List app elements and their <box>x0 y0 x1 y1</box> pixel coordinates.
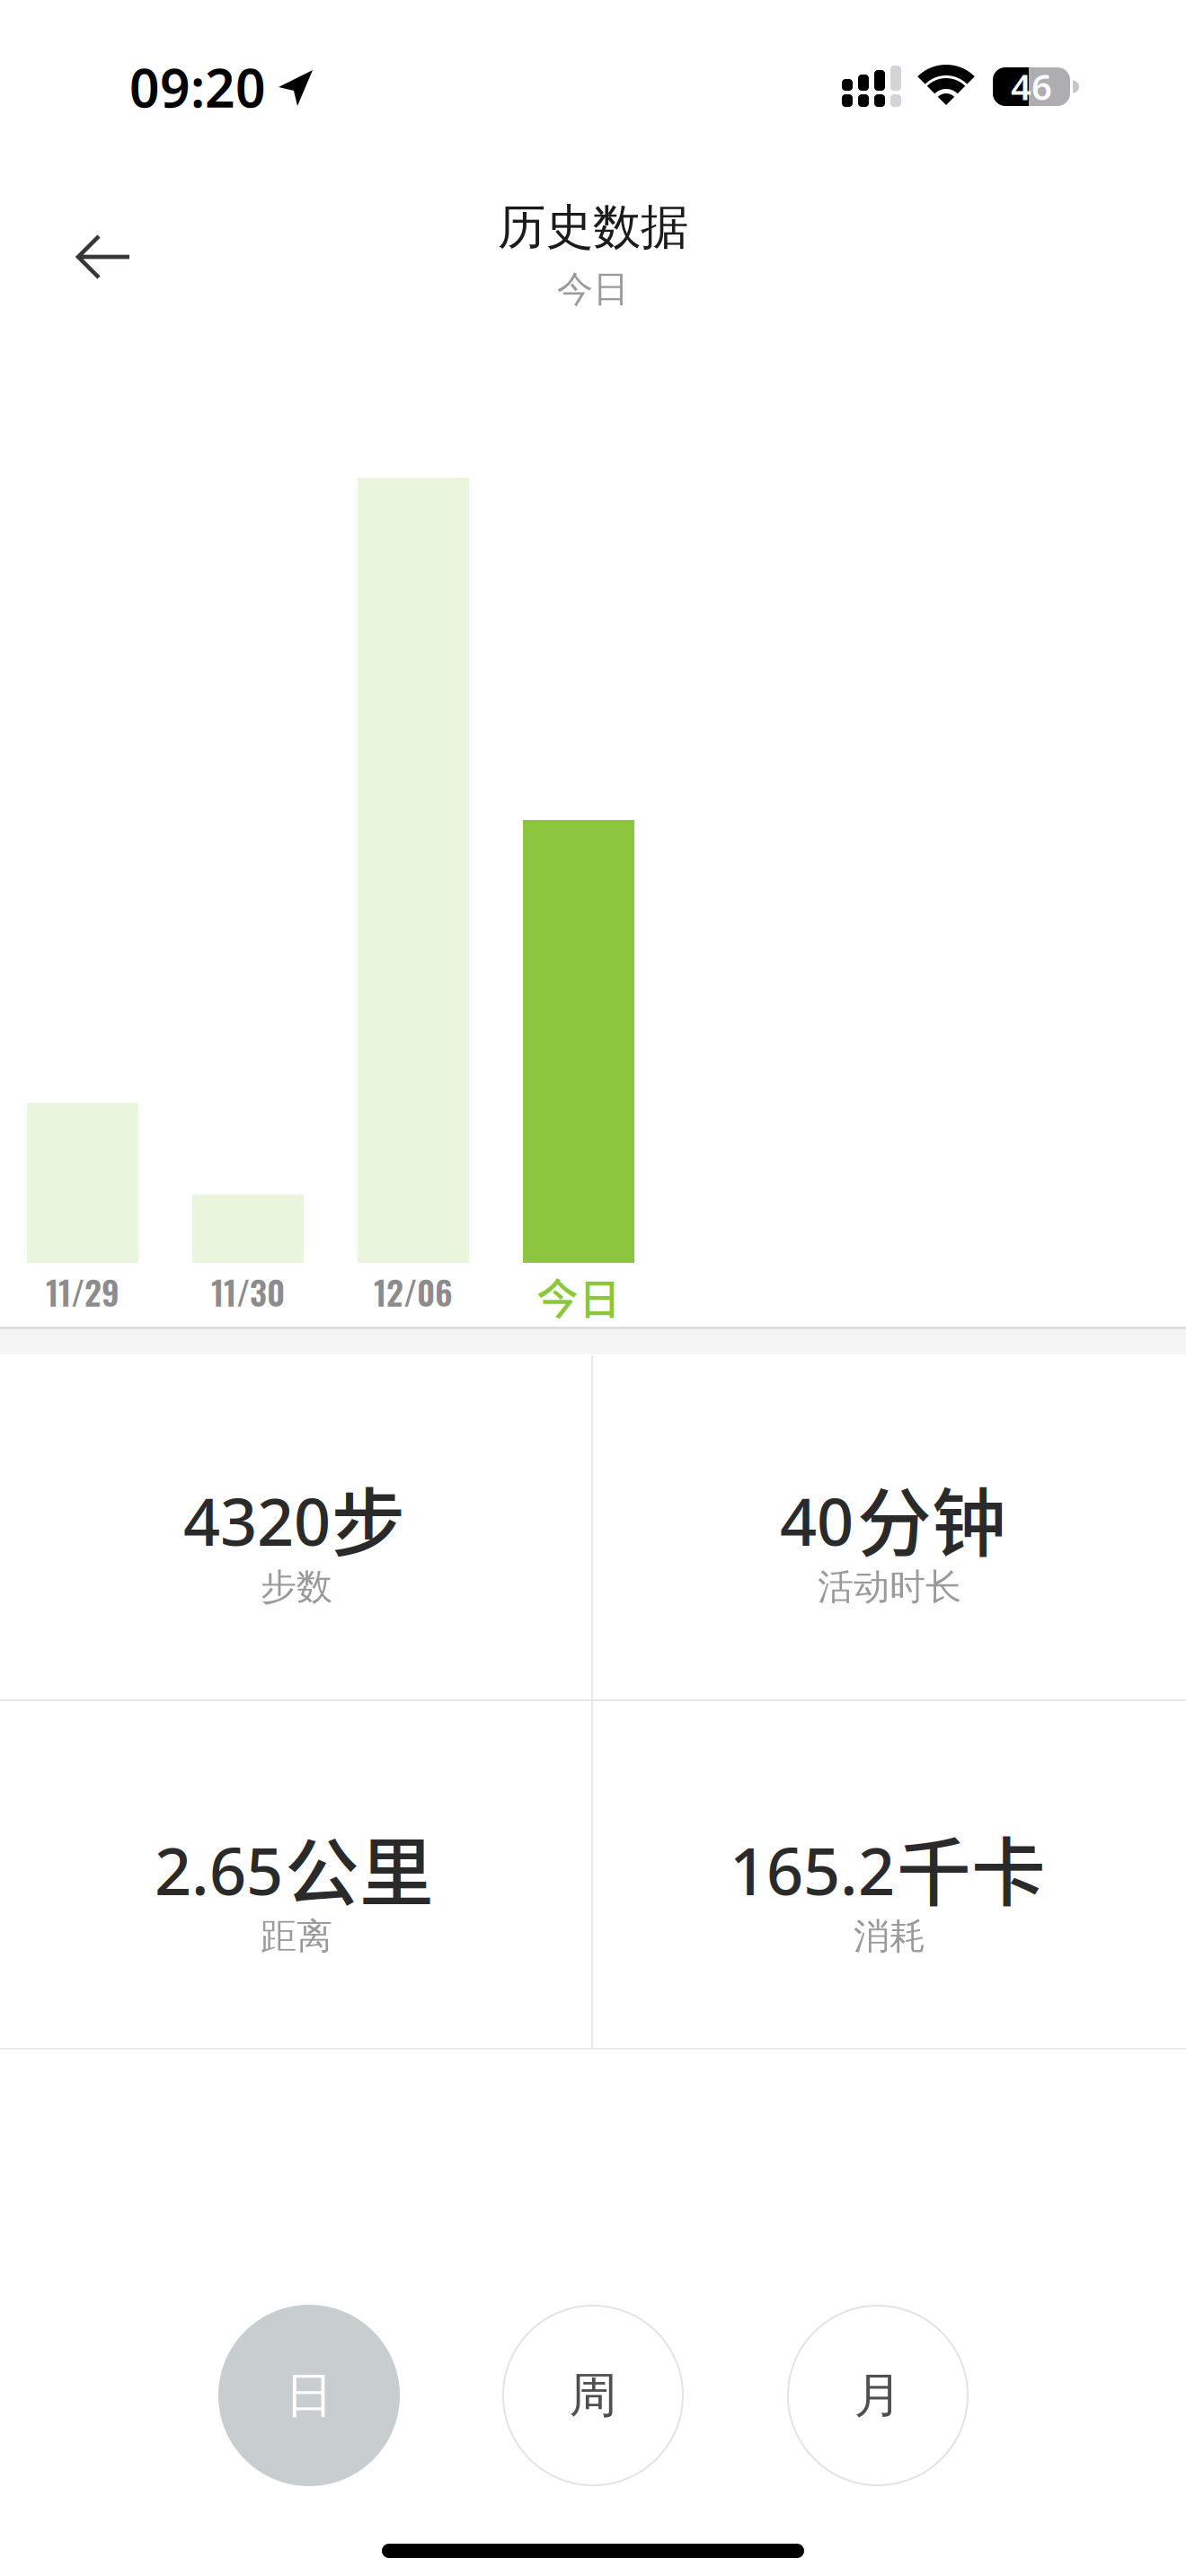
staticText: 165.2 <box>730 1827 895 1913</box>
staticText: 2.65 <box>155 1827 283 1913</box>
staticText: 4320 <box>183 1478 331 1564</box>
staticText: 分钟 <box>857 1464 1006 1572</box>
staticText: 11/29 <box>46 1267 119 1316</box>
staticText: 步 <box>331 1464 406 1572</box>
staticText: 千卡 <box>897 1814 1046 1921</box>
staticText: 46 <box>1011 62 1052 110</box>
staticText: 公里 <box>285 1814 434 1921</box>
staticText: 今日 <box>536 1266 621 1326</box>
staticText: 12/06 <box>374 1267 453 1316</box>
button[interactable]: Back <box>56 213 153 301</box>
button[interactable]: 日 <box>218 2305 400 2486</box>
staticText: 09:20 <box>129 52 266 122</box>
staticText: 日 <box>285 2366 333 2425</box>
staticText: 活动时长 <box>818 1565 961 1609</box>
staticText: 步数 <box>261 1565 332 1609</box>
button[interactable]: 月 <box>788 2306 968 2485</box>
staticText: 40 <box>780 1478 854 1564</box>
button[interactable]: 周 <box>503 2306 683 2485</box>
staticText: 历史数据 <box>498 198 688 257</box>
staticText: 距离 <box>261 1914 332 1958</box>
staticText: 11/30 <box>211 1267 285 1316</box>
staticText: 消耗 <box>854 1914 925 1958</box>
staticText: 今日 <box>557 267 629 311</box>
staticText: 月 <box>854 2366 902 2425</box>
staticText: 周 <box>569 2366 617 2425</box>
